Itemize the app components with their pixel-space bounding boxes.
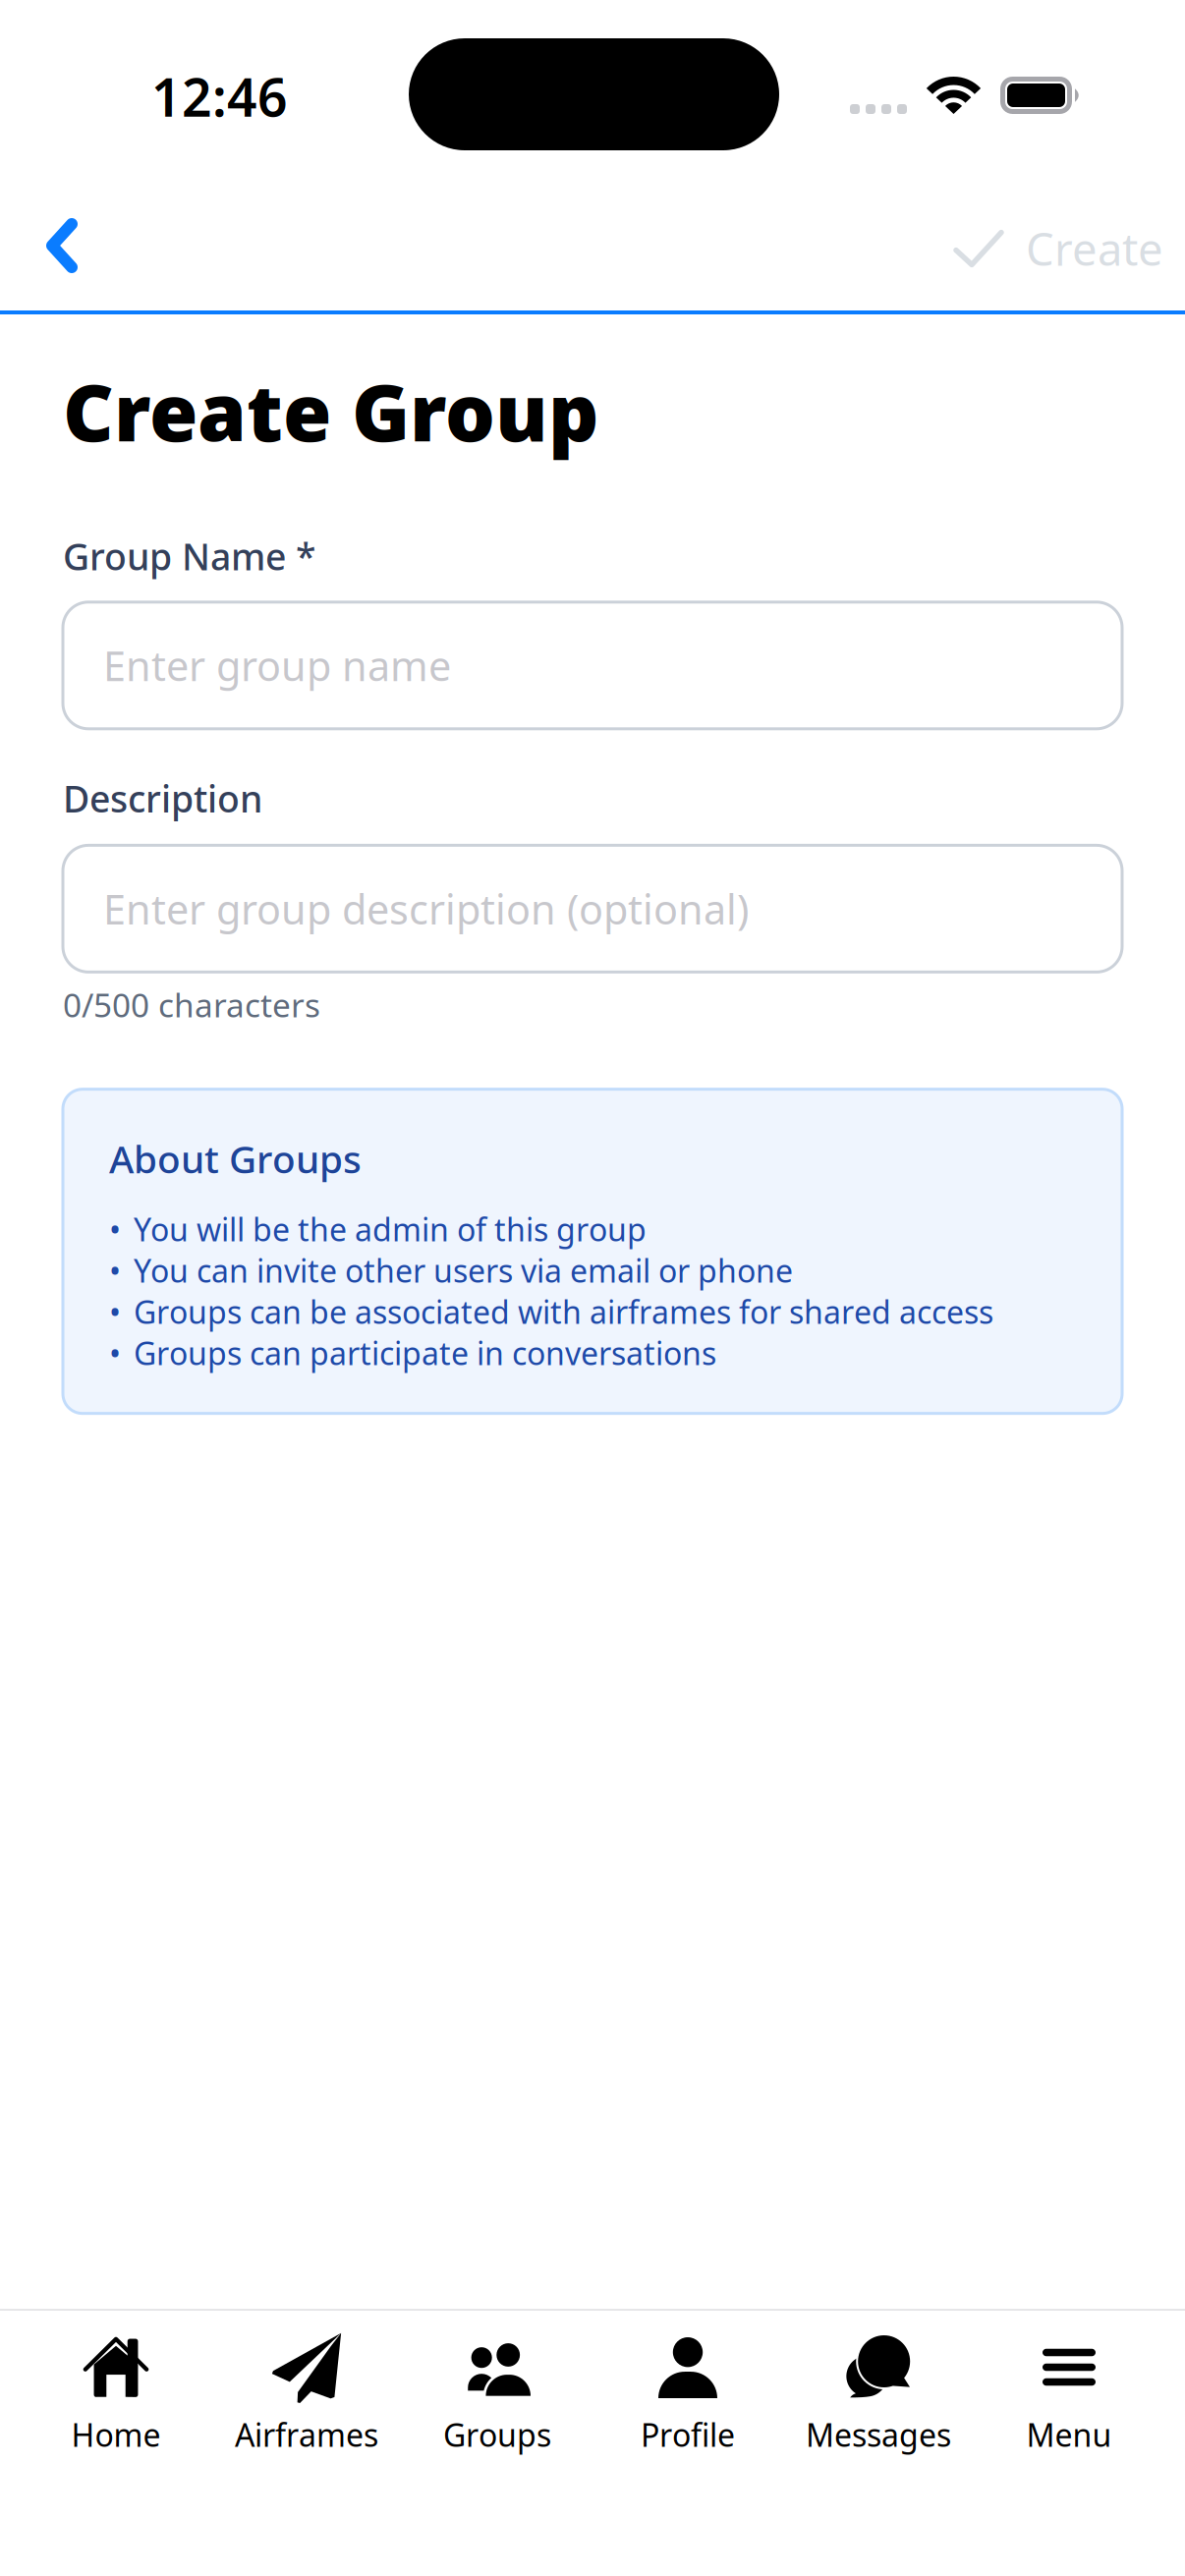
staticText: Groups: [443, 2414, 551, 2455]
staticText: Group Name *: [63, 532, 315, 580]
staticText: 0/500 characters: [63, 983, 320, 1026]
staticText: Enter group name: [103, 638, 451, 692]
button[interactable]: Groups: [402, 2311, 592, 2468]
staticText: •: [109, 1332, 121, 1374]
staticText: •: [109, 1291, 121, 1333]
staticText: You will be the admin of this group: [134, 1208, 647, 1250]
button[interactable]: Home: [21, 2311, 211, 2468]
staticText: Menu: [1026, 2414, 1112, 2455]
staticText: Groups can be associated with airframes …: [134, 1291, 993, 1333]
staticText: Airframes: [235, 2414, 378, 2455]
staticText: Groups can participate in conversations: [134, 1332, 716, 1374]
staticText: Home: [71, 2414, 161, 2455]
staticText: You can invite other users via email or …: [134, 1249, 793, 1291]
staticText: Create Group: [63, 359, 598, 463]
staticText: 12:46: [151, 62, 288, 131]
staticText: Enter group description (optional): [103, 882, 749, 936]
staticText: Create: [1026, 219, 1163, 278]
staticText: Profile: [641, 2414, 735, 2455]
button[interactable]: Create: [932, 188, 1185, 310]
staticText: •: [109, 1208, 121, 1250]
button[interactable]: Menu: [974, 2311, 1164, 2468]
staticText: •: [109, 1249, 121, 1291]
button[interactable]: Profile: [592, 2311, 783, 2468]
button[interactable]: Back: [0, 187, 124, 310]
staticText: Messages: [806, 2414, 951, 2455]
staticText: About Groups: [109, 1133, 362, 1184]
staticText: Description: [63, 774, 262, 823]
button[interactable]: Messages: [783, 2311, 974, 2468]
button[interactable]: Airframes: [211, 2311, 402, 2468]
